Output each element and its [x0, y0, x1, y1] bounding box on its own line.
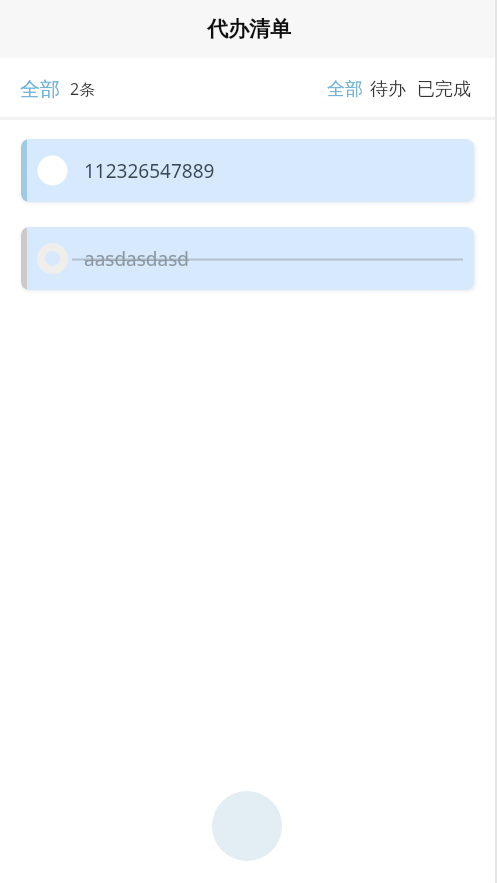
- button[interactable]: 待办: [370, 58, 406, 120]
- staticText: 2条: [70, 78, 96, 100]
- staticText: aasdasdasd: [84, 246, 189, 272]
- staticText: 待办: [370, 78, 406, 101]
- button[interactable]: Add task: [212, 791, 282, 861]
- button[interactable]: 112326547889: [21, 139, 474, 202]
- staticText: 112326547889: [84, 158, 215, 184]
- staticText: 全部: [20, 77, 60, 102]
- button[interactable]: 全部: [20, 58, 60, 120]
- button[interactable]: 已完成: [417, 58, 471, 120]
- staticText: 代办清单: [207, 16, 291, 42]
- staticText: 全部: [327, 78, 363, 101]
- button[interactable]: aasdasdasd: [21, 227, 474, 290]
- staticText: 已完成: [417, 78, 471, 101]
- button[interactable]: 全部: [327, 58, 363, 120]
